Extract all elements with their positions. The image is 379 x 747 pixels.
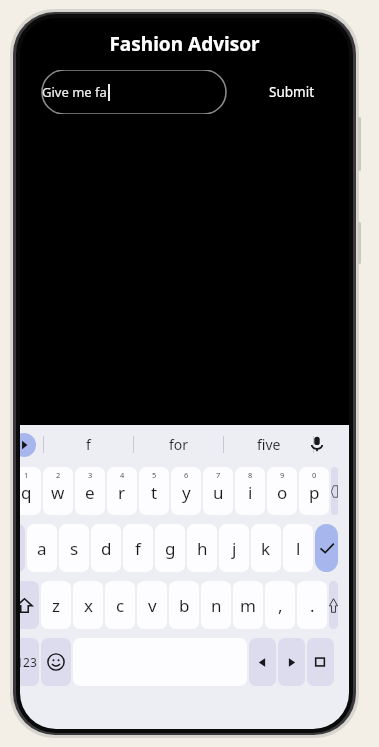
button[interactable]: c — [105, 581, 135, 629]
staticText: n — [211, 594, 222, 617]
button[interactable]: Give me fa — [28, 70, 240, 114]
button[interactable]: Voice input — [304, 431, 330, 457]
button[interactable]: n — [201, 581, 231, 629]
button[interactable]: b — [169, 581, 199, 629]
button[interactable]: Backspace — [331, 467, 338, 515]
staticText: 8 — [248, 470, 253, 480]
staticText: 3 — [88, 470, 93, 480]
staticText: 1 — [24, 470, 29, 480]
other: Move cursor left — [256, 656, 269, 669]
button[interactable]: 8 — [235, 467, 265, 515]
staticText: q — [21, 481, 32, 504]
button[interactable]: k — [251, 524, 281, 572]
staticText: p — [309, 481, 320, 504]
button[interactable]: 5 — [139, 467, 169, 515]
staticText: 0 — [312, 470, 317, 480]
staticText: u — [213, 481, 224, 504]
staticText: x — [84, 594, 93, 617]
staticText: d — [101, 537, 112, 560]
button[interactable]: 0 — [299, 467, 329, 515]
button[interactable]: for — [134, 425, 223, 463]
button[interactable]: Move cursor left — [249, 638, 276, 686]
other: Backspace — [331, 483, 338, 500]
other: Enter — [318, 539, 336, 557]
staticText: a — [37, 537, 47, 560]
staticText: j — [232, 537, 237, 560]
staticText: for — [169, 435, 189, 454]
button[interactable]: g — [155, 524, 185, 572]
button[interactable]: m — [233, 581, 263, 629]
button[interactable]: 2 — [43, 467, 73, 515]
staticText: k — [261, 537, 271, 560]
button[interactable]: 3 — [75, 467, 105, 515]
staticText: 5 — [152, 470, 157, 480]
staticText: e — [85, 481, 95, 504]
button[interactable]: ?123 — [20, 638, 39, 686]
button[interactable]: d — [91, 524, 121, 572]
button[interactable]: f — [44, 425, 133, 463]
other: Shift — [20, 597, 33, 614]
button[interactable]: Enter — [315, 524, 338, 572]
staticText: z — [52, 594, 60, 617]
staticText: 9 — [280, 470, 285, 480]
staticText: t — [151, 481, 158, 504]
button[interactable]: 9 — [267, 467, 297, 515]
staticText: i — [248, 481, 253, 504]
button[interactable]: Shift — [329, 581, 338, 629]
staticText: . — [310, 594, 315, 617]
staticText: 7 — [216, 470, 221, 480]
staticText: o — [277, 481, 288, 504]
button[interactable]: 4 — [107, 467, 137, 515]
other: Keyboard options — [314, 655, 328, 669]
button[interactable]: v — [137, 581, 167, 629]
staticText: w — [51, 481, 65, 504]
staticText: c — [116, 594, 125, 617]
staticText: f — [135, 537, 141, 560]
staticText: 4 — [120, 470, 125, 480]
button[interactable]: , — [265, 581, 295, 629]
other: Emoji — [47, 653, 65, 671]
staticText: 6 — [184, 470, 189, 480]
button[interactable]: Shift — [20, 581, 39, 629]
button[interactable]: 7 — [203, 467, 233, 515]
staticText: v — [148, 594, 157, 617]
staticText: ?123 — [20, 654, 37, 670]
staticText: y — [182, 481, 191, 504]
staticText: f — [86, 435, 91, 454]
staticText: l — [296, 537, 301, 560]
button[interactable]: h — [187, 524, 217, 572]
button[interactable]: l — [283, 524, 313, 572]
button[interactable]: 6 — [171, 467, 201, 515]
button[interactable]: z — [41, 581, 71, 629]
button[interactable]: Move cursor right — [278, 638, 305, 686]
button[interactable]: x — [73, 581, 103, 629]
staticText: h — [197, 537, 208, 560]
button[interactable]: Emoji — [41, 638, 71, 686]
button[interactable]: f — [123, 524, 153, 572]
staticText: b — [179, 594, 190, 617]
staticText: 2 — [56, 470, 61, 480]
other: Shift — [329, 597, 338, 614]
staticText: r — [118, 481, 126, 504]
button[interactable]: Voice typing shortcut — [20, 433, 36, 457]
button[interactable]: j — [219, 524, 249, 572]
staticText: five — [257, 435, 281, 454]
button[interactable]: . — [297, 581, 327, 629]
button[interactable]: 1 — [20, 467, 41, 515]
button[interactable]: Keyboard options — [307, 638, 334, 686]
button[interactable]: a — [27, 524, 57, 572]
other: Move cursor right — [285, 656, 298, 669]
staticText: g — [165, 537, 176, 560]
staticText: Fashion Advisor — [109, 31, 260, 57]
staticText: s — [70, 537, 79, 560]
staticText: Submit — [269, 83, 315, 101]
button[interactable]: five — [224, 425, 313, 463]
staticText: , — [278, 594, 283, 617]
button[interactable]: s — [59, 524, 89, 572]
staticText: Give me fa — [42, 83, 107, 101]
staticText: m — [240, 594, 256, 617]
button[interactable]: Submit — [265, 77, 319, 107]
